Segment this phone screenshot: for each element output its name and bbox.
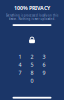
button[interactable]: 1 xyxy=(15,53,25,60)
staticText: 7 xyxy=(18,69,21,76)
button[interactable]: 6 xyxy=(39,61,49,68)
staticText: Everything is processed locally on this xyxy=(6,14,58,17)
staticText: device. Nothing is ever uploaded. xyxy=(8,17,55,21)
staticText: 5 xyxy=(30,61,33,68)
button[interactable]: 4 xyxy=(15,61,25,68)
staticText xyxy=(17,66,23,96)
button[interactable]: 9 xyxy=(39,69,49,76)
staticText: 1 xyxy=(18,53,21,60)
button[interactable]: 8 xyxy=(27,69,37,76)
button[interactable]: 0 xyxy=(27,77,37,84)
staticText: 8 xyxy=(30,69,33,76)
button[interactable]: 3 xyxy=(39,53,49,60)
button[interactable]: 5 xyxy=(27,61,37,68)
staticText: 4 xyxy=(18,61,21,68)
staticText: 0 xyxy=(30,77,33,84)
staticText: 9 xyxy=(42,69,45,76)
staticText: 2 xyxy=(30,53,33,60)
button[interactable]: 2 xyxy=(27,53,37,60)
staticText: 100% PRIVACY xyxy=(14,4,50,11)
staticText: 6 xyxy=(42,61,45,68)
staticText: 3 xyxy=(42,53,45,60)
button[interactable]: 7 xyxy=(15,69,25,76)
staticText xyxy=(41,66,47,96)
